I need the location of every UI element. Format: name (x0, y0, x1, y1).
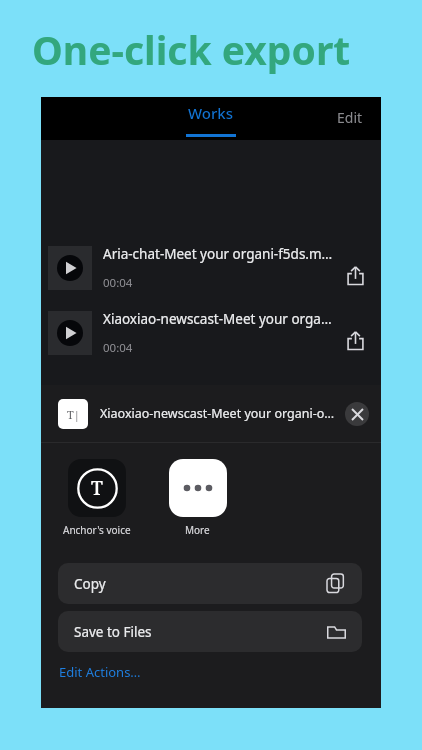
button[interactable]: Edit (333, 104, 367, 131)
staticText: Copy (74, 575, 327, 593)
button[interactable]: Share (335, 255, 375, 295)
button[interactable]: Aria-chat-Meet your organi-f5ds.mp3 (41, 237, 381, 299)
button[interactable]: Works (176, 103, 246, 137)
staticText: T (91, 475, 103, 501)
staticText: Save to Files (74, 623, 327, 641)
staticText: T| (67, 407, 80, 422)
staticText: 00:04 (103, 340, 133, 356)
staticText: Edit (337, 108, 363, 127)
button[interactable]: Save to Files (58, 611, 362, 652)
button[interactable]: Edit Actions… (56, 660, 144, 684)
button[interactable]: Share (335, 320, 375, 360)
staticText: One-click export (32, 23, 351, 76)
button[interactable]: T| (41, 385, 381, 442)
staticText: Works (188, 103, 234, 123)
staticText: Aria-chat-Meet your organi-f5ds.mp3 (103, 245, 335, 263)
button[interactable]: More (158, 459, 237, 537)
staticText: Edit Actions… (59, 663, 141, 681)
button[interactable]: Close (338, 395, 376, 433)
button[interactable]: Copy (58, 563, 362, 604)
staticText: More (185, 523, 210, 537)
staticText: Anchor's voice (63, 523, 131, 537)
button[interactable]: T (57, 459, 136, 537)
staticText: Xiaoxiao-newscast-Meet your organi-o… (103, 310, 335, 328)
button[interactable]: Xiaoxiao-newscast-Meet your organi-o… (41, 302, 381, 364)
staticText: Xiaoxiao-newscast-Meet your organi-ofld.… (100, 405, 338, 422)
staticText: 00:04 (103, 275, 133, 291)
